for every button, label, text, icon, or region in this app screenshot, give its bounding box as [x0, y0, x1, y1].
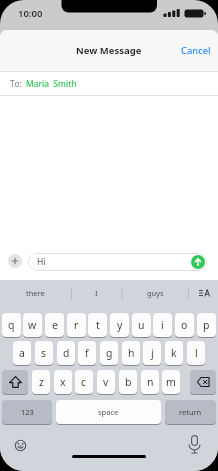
staticText: 10:00: [18, 7, 43, 20]
staticText: u: [138, 318, 145, 332]
button[interactable]: b: [119, 370, 137, 394]
button[interactable]: n: [141, 370, 159, 394]
button[interactable]: space: [56, 400, 161, 424]
staticText: p: [203, 318, 210, 332]
staticText: I: [95, 288, 98, 298]
button[interactable]: guys: [122, 283, 188, 303]
staticText: c: [81, 375, 87, 389]
button[interactable]: x: [54, 370, 72, 394]
button[interactable]: r: [67, 313, 86, 337]
button[interactable]: u: [132, 313, 151, 337]
button[interactable]: [2, 370, 28, 394]
staticText: r: [74, 318, 79, 332]
button[interactable]: h: [122, 341, 140, 365]
button[interactable]: s: [35, 341, 53, 365]
staticText: g: [106, 346, 113, 360]
button[interactable]: 123: [2, 400, 52, 424]
button[interactable]: w: [23, 313, 42, 337]
staticText: w: [28, 318, 37, 332]
staticText: o: [181, 318, 188, 332]
button[interactable]: [7, 432, 34, 459]
button[interactable]: d: [57, 341, 75, 365]
button[interactable]: t: [88, 313, 107, 337]
button[interactable]: q: [2, 313, 21, 337]
staticText: q: [8, 318, 15, 332]
button[interactable]: To:: [0, 72, 218, 95]
staticText: k: [171, 346, 177, 360]
staticText: Maria Smith: [26, 78, 77, 90]
staticText: f: [85, 346, 89, 360]
staticText: t: [96, 318, 100, 332]
staticText: l: [195, 346, 198, 360]
staticText: a: [19, 346, 25, 360]
staticText: there: [26, 288, 45, 298]
staticText: return: [179, 407, 202, 417]
staticText: v: [103, 375, 109, 389]
button[interactable]: [8, 254, 22, 268]
staticText: space: [98, 407, 119, 417]
staticText: n: [147, 375, 154, 389]
button[interactable]: v: [97, 370, 115, 394]
staticText: b: [125, 375, 132, 389]
button[interactable]: o: [175, 313, 194, 337]
staticText: i: [161, 318, 164, 332]
staticText: s: [41, 346, 47, 360]
staticText: m: [166, 375, 176, 389]
button[interactable]: I: [71, 283, 122, 303]
button[interactable]: return: [165, 400, 216, 424]
button[interactable]: m: [162, 370, 180, 394]
button[interactable]: c: [75, 370, 93, 394]
staticText: h: [128, 346, 135, 360]
staticText: d: [63, 346, 70, 360]
button[interactable]: j: [143, 341, 161, 365]
button[interactable]: l: [187, 341, 205, 365]
staticText: x: [60, 375, 66, 389]
staticText: e: [52, 318, 58, 332]
button[interactable]: e: [45, 313, 64, 337]
button[interactable]: there: [0, 283, 71, 303]
staticText: Cancel: [181, 44, 211, 57]
button[interactable]: i: [153, 313, 172, 337]
button[interactable]: [190, 283, 218, 303]
staticText: To:: [10, 78, 22, 90]
staticText: New Message: [76, 44, 142, 57]
button[interactable]: [191, 255, 205, 269]
button[interactable]: Hi: [28, 253, 207, 271]
button[interactable]: Cancel: [181, 44, 211, 57]
button[interactable]: [190, 370, 216, 394]
staticText: Hi: [37, 256, 46, 268]
staticText: y: [117, 318, 123, 332]
button[interactable]: g: [100, 341, 118, 365]
button[interactable]: a: [13, 341, 31, 365]
button[interactable]: f: [78, 341, 96, 365]
staticText: z: [39, 375, 44, 389]
staticText: guys: [147, 288, 164, 298]
button[interactable]: k: [165, 341, 183, 365]
button[interactable]: p: [197, 313, 216, 337]
button[interactable]: y: [110, 313, 129, 337]
button[interactable]: z: [32, 370, 50, 394]
button[interactable]: [181, 431, 208, 458]
staticText: j: [151, 346, 154, 360]
staticText: 123: [21, 407, 34, 417]
